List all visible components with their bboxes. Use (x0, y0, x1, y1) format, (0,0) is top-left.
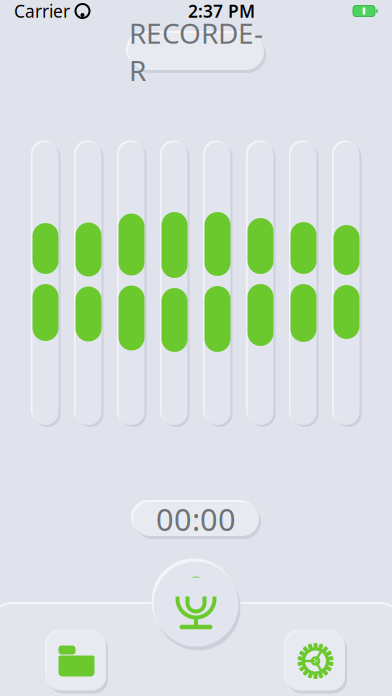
button[interactable]: Record (153, 561, 238, 646)
staticText: Carrier (14, 0, 70, 22)
staticText: RECORDER (129, 14, 263, 89)
staticText: 2:37 PM (188, 0, 255, 22)
staticText: 00:00 (156, 499, 236, 539)
button[interactable]: RECORDER (128, 33, 264, 70)
button[interactable]: Recordings (47, 631, 106, 690)
button[interactable]: Settings (286, 631, 345, 690)
